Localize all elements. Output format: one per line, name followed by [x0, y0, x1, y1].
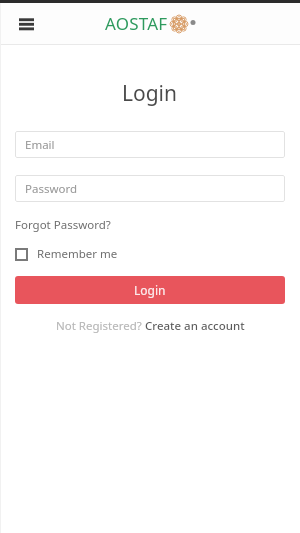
button[interactable]: Email	[15, 131, 285, 158]
button[interactable]: Forgot Password?	[15, 216, 111, 234]
staticText: AOSTAF	[105, 12, 168, 35]
button[interactable]: Open navigation menu	[13, 11, 39, 37]
button[interactable]: Remember me	[15, 244, 118, 264]
button[interactable]: Password	[15, 175, 285, 202]
button[interactable]: Create an account	[145, 318, 245, 334]
staticText: Forgot Password?	[15, 217, 111, 233]
staticText: Not Registered?	[56, 318, 145, 334]
staticText: Remember me	[37, 246, 118, 262]
staticText: Create an account	[145, 318, 245, 334]
button[interactable]: Login	[15, 276, 285, 304]
staticText: Login	[122, 79, 178, 108]
staticText: Login	[134, 282, 166, 298]
staticText: Email	[25, 137, 55, 153]
staticText: Password	[25, 181, 78, 197]
